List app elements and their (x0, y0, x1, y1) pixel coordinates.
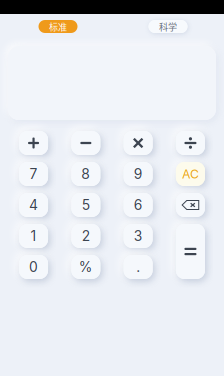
button[interactable]: 2 (71, 224, 100, 248)
staticText: 5 (82, 197, 90, 213)
staticText: AC (182, 167, 199, 181)
button[interactable]: 7 (19, 162, 48, 186)
staticText: 7 (29, 166, 37, 182)
button[interactable]: 1 (19, 224, 48, 248)
button[interactable]: AC (176, 162, 205, 186)
staticText: . (136, 259, 140, 275)
button[interactable]: 3 (124, 224, 153, 248)
button[interactable]: Minus (71, 131, 100, 155)
staticText: 9 (134, 166, 143, 182)
button[interactable]: Multiply (124, 131, 153, 155)
staticText: 1 (30, 228, 36, 244)
button[interactable]: 标准 (38, 20, 77, 33)
button[interactable]: 0 (19, 255, 48, 279)
button[interactable]: 6 (124, 193, 153, 217)
staticText: 8 (81, 166, 90, 182)
button[interactable]: % (71, 255, 100, 279)
button[interactable]: 5 (71, 193, 100, 217)
staticText: 标准 (49, 20, 67, 33)
button[interactable]: Plus (19, 131, 48, 155)
button[interactable]: 科学 (148, 20, 187, 33)
staticText: 6 (134, 197, 143, 213)
button[interactable]: Divide (176, 131, 205, 155)
button[interactable]: 8 (71, 162, 100, 186)
staticText: % (79, 259, 93, 275)
staticText: 2 (82, 228, 90, 244)
staticText: 0 (29, 259, 38, 275)
button[interactable]: . (124, 255, 153, 279)
button[interactable]: 4 (19, 193, 48, 217)
button[interactable]: Backspace (176, 193, 205, 217)
staticText: 3 (134, 228, 143, 244)
staticText: 科学 (159, 20, 177, 33)
staticText: 4 (29, 197, 38, 213)
button[interactable]: Equals (176, 224, 205, 279)
button[interactable]: 9 (124, 162, 153, 186)
